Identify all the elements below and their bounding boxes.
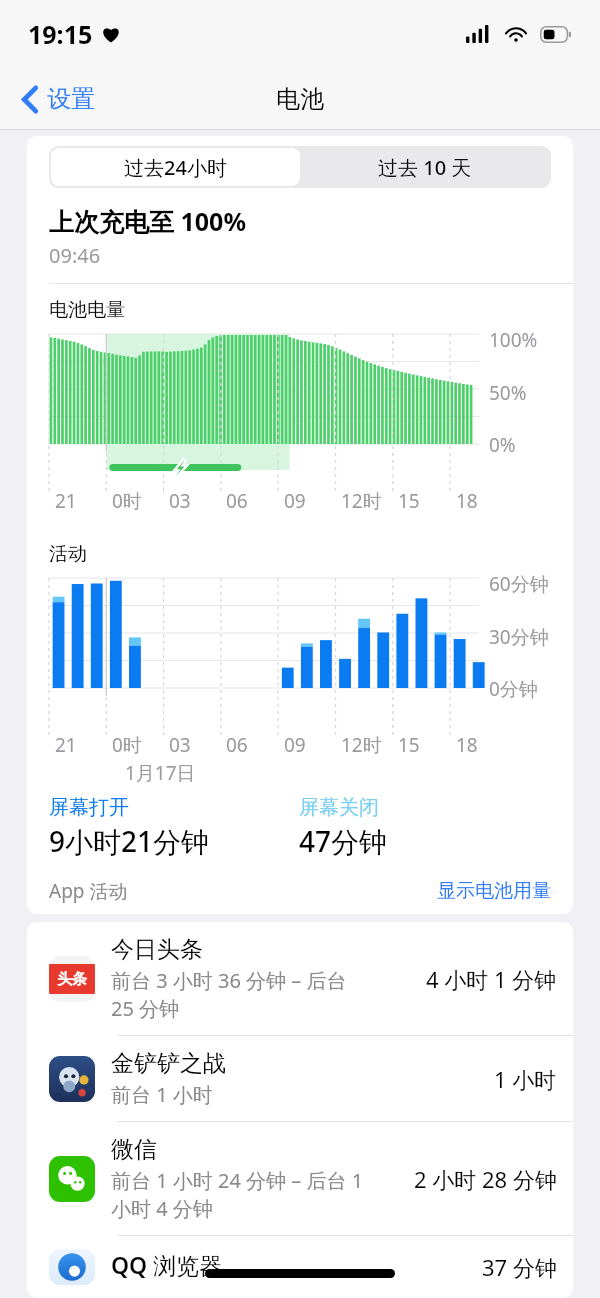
staticText: 0% xyxy=(489,432,516,458)
staticText: 屏幕关闭 xyxy=(299,795,379,820)
staticText: 过去24小时 xyxy=(124,154,227,181)
staticText: 19:15 xyxy=(28,17,93,51)
staticText: 21 xyxy=(55,488,77,514)
button[interactable]: 设置 xyxy=(16,78,101,120)
staticText: 上次充电至 100% xyxy=(49,204,246,238)
staticText: 0时 xyxy=(112,488,142,514)
staticText: App 活动 xyxy=(49,878,128,904)
staticText: 18 xyxy=(456,488,478,514)
staticText: 0分钟 xyxy=(489,676,538,702)
staticText: 09:46 xyxy=(49,242,101,269)
staticText: 15 xyxy=(398,488,420,514)
staticText: 活动 xyxy=(49,542,87,566)
staticText: 15 xyxy=(398,732,420,758)
staticText: 06 xyxy=(226,732,248,758)
staticText: 30分钟 xyxy=(489,624,549,650)
staticText: 2 小时 28 分钟 xyxy=(414,1164,557,1194)
staticText: 前台 1 小时 xyxy=(111,1081,213,1108)
staticText: 12时 xyxy=(341,732,382,758)
button[interactable]: 金铲铲之战 xyxy=(27,1036,573,1122)
staticText: 100% xyxy=(489,327,538,353)
other: 微信 xyxy=(49,1156,95,1202)
button[interactable]: 过去24小时 xyxy=(51,148,300,186)
staticText: 屏幕打开 xyxy=(49,795,129,820)
staticText: QQ 浏览器 xyxy=(111,1249,223,1280)
staticText: 37 分钟 xyxy=(482,1252,557,1282)
staticText: 1月17日 xyxy=(125,760,196,786)
staticText: 显示电池用量 xyxy=(437,879,551,903)
staticText: 电池电量 xyxy=(49,298,125,322)
staticText: 60分钟 xyxy=(489,571,549,597)
other: 金铲铲之战 xyxy=(49,1056,95,1102)
staticText: 09 xyxy=(284,732,306,758)
staticText: 0时 xyxy=(112,732,142,758)
staticText: 03 xyxy=(169,732,191,758)
staticText: 金铲铲之战 xyxy=(111,1049,226,1078)
staticText: 12时 xyxy=(341,488,382,514)
staticText: 21 xyxy=(55,732,77,758)
button[interactable]: 过去 10 天 xyxy=(300,148,549,186)
staticText: 头条 xyxy=(57,970,87,989)
other: QQ 浏览器 xyxy=(49,1249,95,1285)
staticText: 4 小时 1 分钟 xyxy=(426,964,557,994)
other: 今日头条 xyxy=(49,956,95,1002)
staticText: 06 xyxy=(226,488,248,514)
staticText: 电池 xyxy=(276,84,324,114)
staticText: 过去 10 天 xyxy=(378,154,472,181)
staticText: 18 xyxy=(456,732,478,758)
staticText: 03 xyxy=(169,488,191,514)
button[interactable]: 微信 xyxy=(27,1122,573,1236)
button[interactable]: 今日头条 xyxy=(27,922,573,1036)
button[interactable]: QQ 浏览器 xyxy=(27,1236,573,1298)
staticText: 前台 1 小时 24 分钟 – 后台 1 小时 4 分钟 xyxy=(111,1167,364,1222)
staticText: 微信 xyxy=(111,1135,157,1164)
staticText: 今日头条 xyxy=(111,935,203,964)
staticText: 47分钟 xyxy=(299,822,388,860)
staticText: 9小时21分钟 xyxy=(49,822,210,860)
staticText: 1 小时 xyxy=(494,1064,557,1094)
staticText: 前台 3 小时 36 分钟 – 后台 25 分钟 xyxy=(111,967,347,1022)
button[interactable]: 显示电池用量 xyxy=(437,879,551,903)
staticText: 50% xyxy=(489,380,527,406)
staticText: 09 xyxy=(284,488,306,514)
staticText: 设置 xyxy=(47,84,95,114)
